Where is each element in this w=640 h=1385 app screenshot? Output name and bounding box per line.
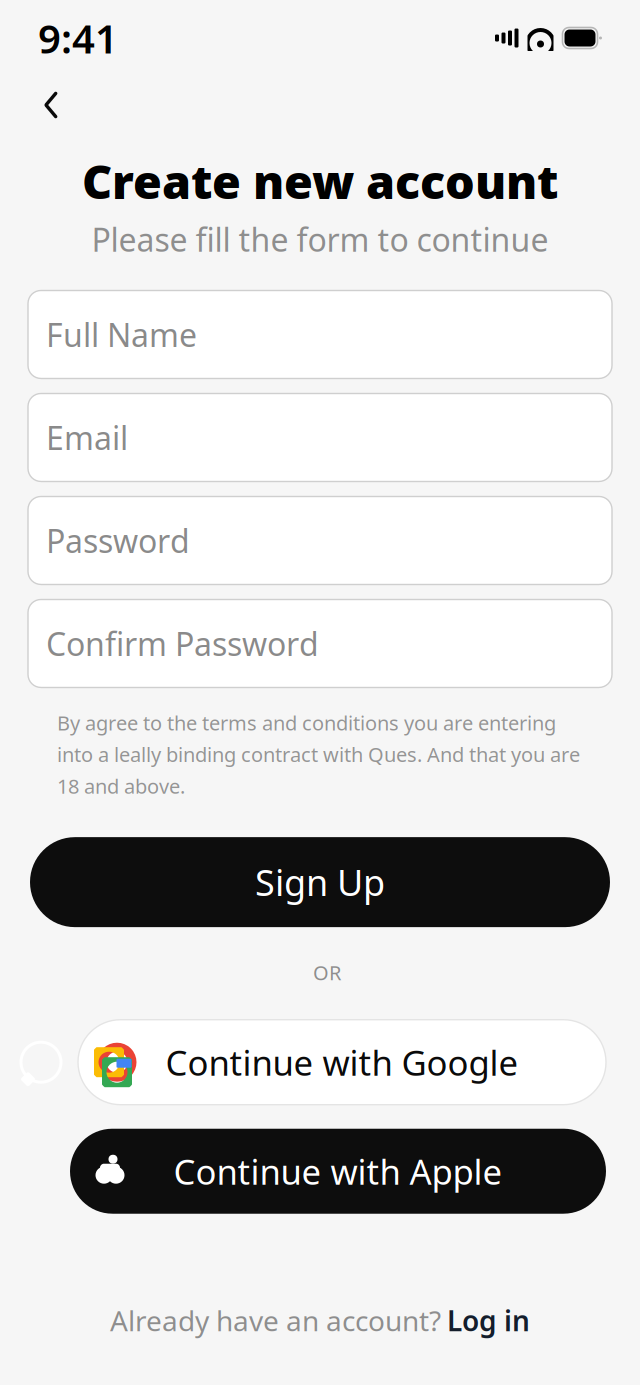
staticText: Email xyxy=(46,416,128,459)
staticText: Create new account xyxy=(82,150,558,212)
staticText: Continue with Google xyxy=(165,1039,518,1085)
staticText: Log in xyxy=(447,1302,530,1339)
button[interactable]: Continue with Google xyxy=(0,1020,640,1105)
staticText: 9:41 xyxy=(38,11,118,64)
staticText: Confirm Password xyxy=(46,622,319,665)
button[interactable]: Continue with Apple xyxy=(0,1129,640,1214)
staticText: OR xyxy=(313,959,341,986)
staticText: Continue with Apple xyxy=(173,1148,502,1194)
staticText: Full Name xyxy=(46,313,197,356)
button[interactable]: Sign Up xyxy=(30,837,610,927)
staticText: By agree to the terms and conditions you… xyxy=(57,709,580,799)
staticText: Sign Up xyxy=(255,858,385,906)
staticText: Password xyxy=(46,519,190,562)
button[interactable]: Back xyxy=(28,82,74,128)
button[interactable]: Already have an account? xyxy=(96,1294,544,1347)
staticText: Please fill the form to continue xyxy=(91,218,548,260)
staticText: Already have an account? xyxy=(110,1302,441,1339)
